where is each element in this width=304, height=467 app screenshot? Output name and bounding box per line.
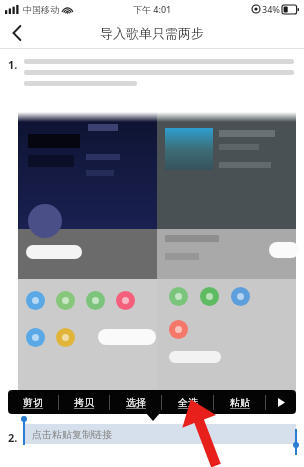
button[interactable]: 剪切	[8, 390, 58, 414]
staticText: 拷贝	[74, 396, 94, 409]
button[interactable]: 全选	[162, 390, 213, 414]
staticText: 1.	[8, 57, 18, 72]
staticText: 中国移动	[23, 4, 59, 15]
button[interactable]: Back	[0, 18, 34, 48]
button[interactable]: 拷贝	[59, 390, 109, 414]
staticText: 导入歌单只需两步	[100, 25, 204, 41]
staticText: 全选	[178, 396, 198, 409]
staticText: 下午 4:01	[133, 3, 172, 15]
staticText: 粘贴	[230, 396, 250, 409]
staticText: 剪切	[23, 396, 43, 409]
staticText: 2.	[8, 430, 18, 445]
button[interactable]: 点击粘贴复制链接	[24, 424, 296, 444]
staticText: 34%	[262, 3, 280, 15]
staticText: 选择	[126, 396, 146, 409]
button[interactable]: 选择	[110, 390, 161, 414]
button[interactable]: More	[266, 390, 296, 414]
staticText: 点击粘贴复制链接	[32, 428, 112, 441]
button[interactable]: 粘贴	[214, 390, 265, 414]
